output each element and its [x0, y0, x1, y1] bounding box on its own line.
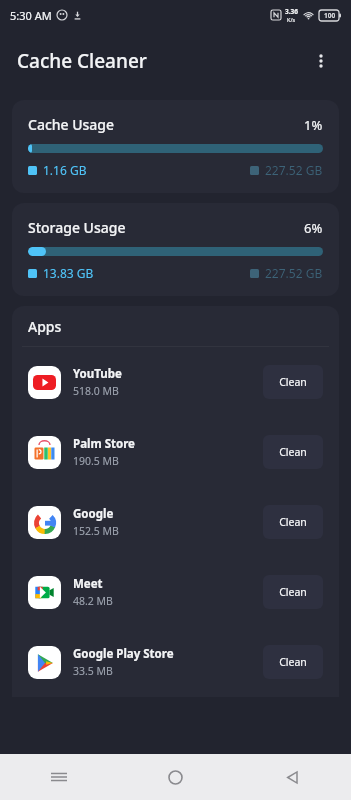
staticText: Clean: [279, 445, 307, 459]
staticText: 518.0 MB: [73, 384, 119, 398]
staticText: K/s: [287, 16, 296, 23]
button[interactable]: Home: [117, 754, 234, 800]
staticText: YouTube: [73, 366, 122, 382]
staticText: 1.16 GB: [43, 162, 87, 178]
button[interactable]: Clean: [263, 365, 323, 399]
staticText: 152.5 MB: [73, 524, 119, 538]
staticText: 6%: [304, 219, 323, 237]
button[interactable]: Clean: [263, 645, 323, 679]
button[interactable]: Storage Usage: [12, 203, 339, 296]
button[interactable]: Back: [234, 754, 351, 800]
staticText: Clean: [279, 375, 307, 389]
staticText: 1%: [304, 116, 323, 134]
staticText: Cache Usage: [28, 115, 115, 134]
staticText: Google Play Store: [73, 646, 174, 662]
button[interactable]: Palm Store: [12, 417, 339, 487]
staticText: 48.2 MB: [73, 594, 113, 608]
staticText: 33.5 MB: [73, 664, 113, 678]
staticText: 227.52 GB: [265, 162, 323, 178]
button[interactable]: Clean: [263, 505, 323, 539]
button[interactable]: More options: [301, 41, 341, 81]
staticText: Clean: [279, 655, 307, 669]
button[interactable]: YouTube: [12, 347, 339, 417]
staticText: Clean: [279, 515, 307, 529]
staticText: 13.83 GB: [43, 265, 94, 281]
button[interactable]: Clean: [263, 435, 323, 469]
staticText: Meet: [73, 576, 103, 592]
staticText: 190.5 MB: [73, 454, 119, 468]
button[interactable]: Clean: [263, 575, 323, 609]
button[interactable]: Meet: [12, 557, 339, 627]
button[interactable]: Cache Usage: [12, 100, 339, 193]
button[interactable]: Google: [12, 487, 339, 557]
button[interactable]: Google Play Store: [12, 627, 339, 697]
staticText: Storage Usage: [28, 218, 126, 237]
staticText: Palm Store: [73, 436, 135, 452]
staticText: Clean: [279, 585, 307, 599]
staticText: Google: [73, 506, 114, 522]
staticText: Cache Cleaner: [17, 48, 147, 74]
staticText: 5:30 AM: [10, 8, 52, 23]
button[interactable]: Recent apps: [0, 754, 117, 800]
staticText: 227.52 GB: [265, 265, 323, 281]
staticText: Apps: [28, 317, 62, 336]
staticText: 100: [324, 11, 336, 20]
staticText: 3.36: [285, 7, 298, 16]
